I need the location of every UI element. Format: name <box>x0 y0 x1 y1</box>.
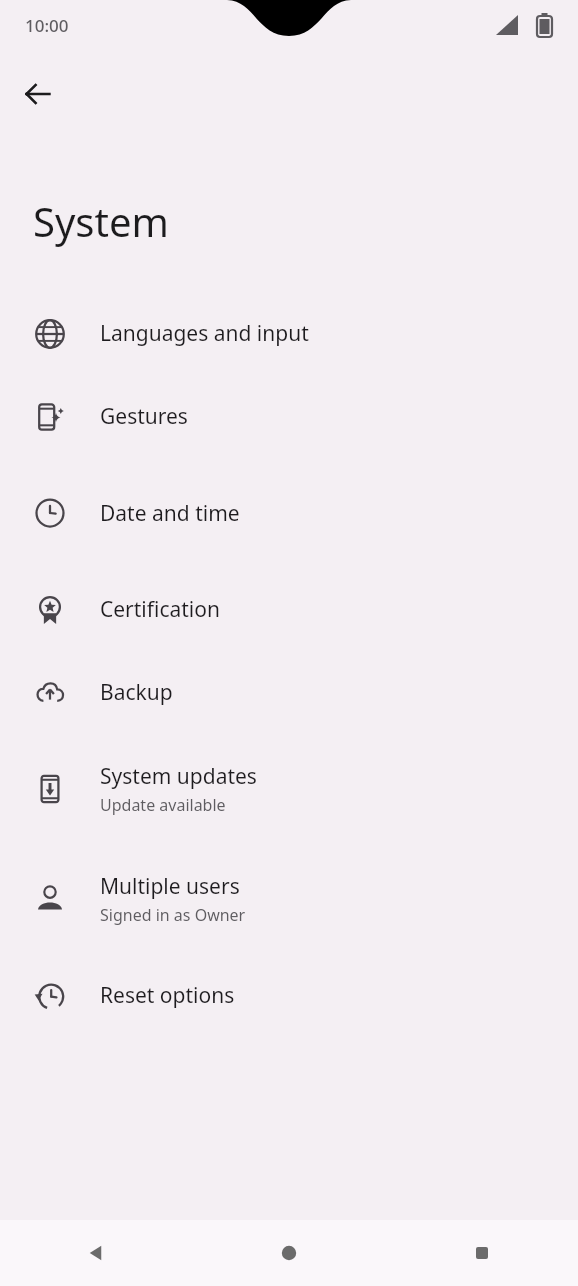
button[interactable]: Reset options <box>0 954 578 1037</box>
button[interactable]: Date and time <box>0 458 578 568</box>
button[interactable]: Gestures <box>0 375 578 458</box>
staticText: Update available <box>100 794 226 816</box>
button[interactable]: Backup <box>0 651 578 734</box>
button[interactable]: Languages and input <box>0 292 578 375</box>
staticText: System <box>33 194 169 248</box>
button[interactable]: Back <box>0 1220 192 1286</box>
button[interactable]: Back <box>10 66 66 122</box>
button[interactable]: System updates <box>0 734 578 844</box>
staticText: Date and time <box>100 499 240 528</box>
button[interactable]: Multiple users <box>0 844 578 954</box>
staticText: System updates <box>100 762 257 791</box>
button[interactable]: Home <box>192 1220 385 1286</box>
staticText: 10:00 <box>25 14 69 37</box>
staticText: Reset options <box>100 981 235 1010</box>
staticText: Languages and input <box>100 319 309 348</box>
staticText: Certification <box>100 595 220 624</box>
staticText: Backup <box>100 678 173 707</box>
staticText: Gestures <box>100 402 188 431</box>
staticText: Signed in as Owner <box>100 904 246 926</box>
staticText: Multiple users <box>100 872 240 901</box>
button[interactable]: Certification <box>0 568 578 651</box>
button[interactable]: Recents <box>385 1220 578 1286</box>
